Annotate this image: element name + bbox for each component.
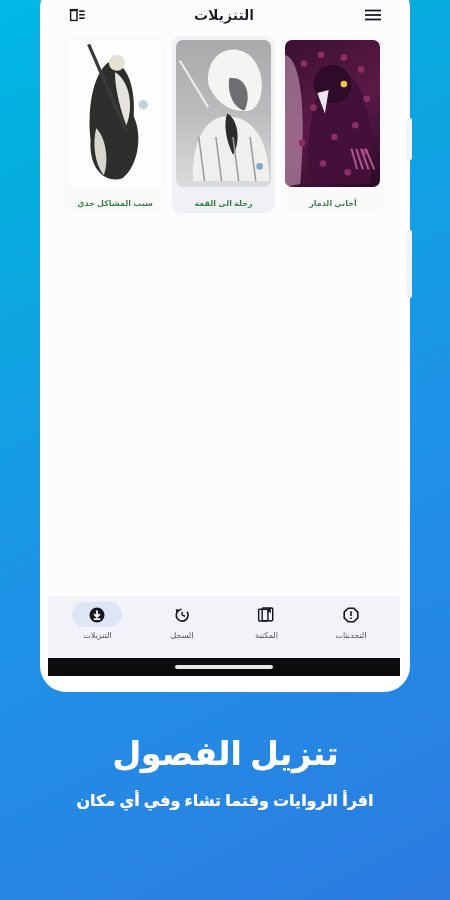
staticText: أخاني الدمار <box>309 197 357 208</box>
staticText: التحديثات <box>335 631 367 640</box>
staticText: رحلة الى القمة <box>194 197 253 208</box>
button[interactable]: Menu <box>360 2 386 28</box>
button[interactable]: المكتبة <box>230 602 302 640</box>
button[interactable]: Delete selected <box>64 2 90 28</box>
button[interactable]: السجل <box>146 602 218 640</box>
button[interactable]: سبب المشاكل جدي <box>64 36 166 213</box>
staticText: تنزيل الفصول <box>112 730 339 775</box>
staticText: السجل <box>170 631 194 640</box>
button[interactable]: التحديثات <box>315 602 387 640</box>
button[interactable]: رحلة الى القمة <box>172 36 275 213</box>
staticText: المكتبة <box>255 631 278 640</box>
staticText: التنزيلات <box>194 7 255 23</box>
staticText: سبب المشاكل جدي <box>77 197 153 208</box>
button[interactable]: التنزيلات <box>61 602 133 640</box>
button[interactable]: أخاني الدمار <box>281 36 384 213</box>
staticText: التنزيلات <box>83 631 112 640</box>
staticText: اقرأ الروايات وقتما تشاء وفي أي مكان <box>76 789 374 811</box>
